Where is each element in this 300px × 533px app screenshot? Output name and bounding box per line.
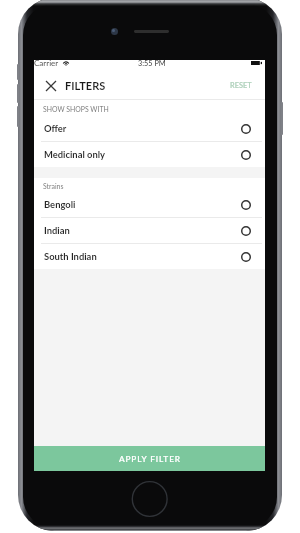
staticText: Carrier xyxy=(34,58,59,68)
button[interactable]: South Indian xyxy=(34,244,265,269)
staticText: 3:55 PM xyxy=(138,59,166,68)
staticText: APPLY FILTER xyxy=(119,454,181,464)
button[interactable]: Offer xyxy=(34,116,265,141)
staticText: Strains xyxy=(43,182,64,190)
staticText: FILTERS xyxy=(65,79,106,92)
button[interactable]: Medicinal only xyxy=(34,142,265,167)
staticText: South Indian xyxy=(44,251,97,262)
button[interactable]: Bengoli xyxy=(34,192,265,217)
staticText: SHOW SHOPS WITH xyxy=(43,105,109,113)
staticText: RESET xyxy=(230,81,252,90)
staticText: Offer xyxy=(44,123,67,134)
staticText: Bengoli xyxy=(44,199,76,210)
staticText: Medicinal only xyxy=(44,149,106,160)
button[interactable]: RESET xyxy=(217,74,265,97)
button[interactable]: Indian xyxy=(34,218,265,243)
button[interactable]: APPLY FILTER xyxy=(34,446,265,471)
button[interactable]: Close xyxy=(34,72,65,99)
staticText: Indian xyxy=(44,225,70,236)
